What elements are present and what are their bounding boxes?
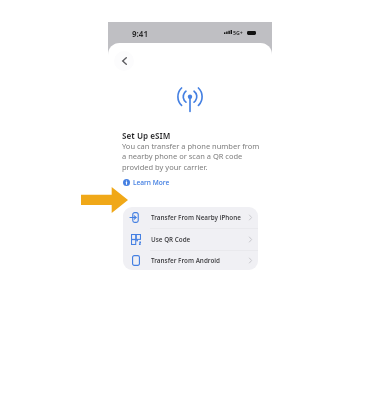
staticText: Transfer From Android xyxy=(151,256,221,265)
button[interactable]: Transfer From Nearby iPhone xyxy=(123,207,258,228)
button[interactable]: Back xyxy=(114,51,134,71)
staticText: Set Up eSIM xyxy=(122,130,171,141)
staticText: 9:41 xyxy=(132,28,148,39)
button[interactable]: Use QR Code xyxy=(123,229,258,250)
staticText: You can transfer a phone number from a n… xyxy=(122,141,265,173)
button[interactable]: Transfer From Android xyxy=(123,251,258,270)
staticText: Use QR Code xyxy=(151,235,191,244)
staticText: 5G+ xyxy=(233,29,243,36)
staticText: Transfer From Nearby iPhone xyxy=(151,213,241,222)
staticText: Learn More xyxy=(133,178,170,187)
button[interactable]: Learn More xyxy=(123,177,170,187)
